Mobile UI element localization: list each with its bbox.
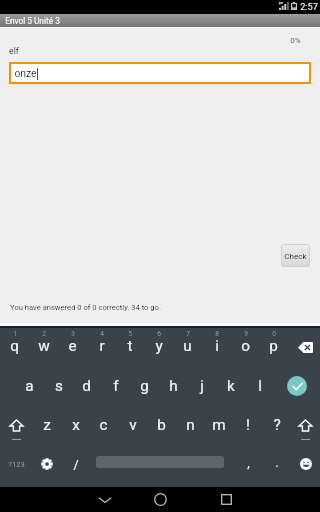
staticText: 2: [42, 330, 46, 338]
button[interactable]: 1: [0, 328, 29, 340]
staticText: k: [227, 377, 235, 395]
staticText: elf: [9, 46, 19, 56]
staticText: q: [10, 337, 19, 355]
staticText: 6: [157, 330, 161, 338]
staticText: j: [200, 377, 204, 395]
staticText: 1: [13, 330, 17, 338]
button[interactable]: 8: [202, 328, 231, 340]
staticText: m: [212, 416, 226, 434]
button[interactable]: Enter: [281, 369, 313, 403]
button[interactable]: u: [173, 334, 202, 358]
button[interactable]: a: [15, 369, 44, 403]
button[interactable]: Recent apps: [206, 487, 246, 512]
staticText: Envol 5 Unité 3: [5, 16, 60, 26]
button[interactable]: d: [72, 369, 101, 403]
staticText: 4: [100, 330, 104, 338]
button[interactable]: c: [89, 408, 118, 442]
button[interactable]: Shift: [2, 406, 31, 444]
button[interactable]: Back: [85, 487, 125, 512]
button[interactable]: o: [231, 334, 260, 358]
button[interactable]: l: [245, 369, 274, 403]
button[interactable]: v: [118, 408, 147, 442]
staticText: /: [73, 457, 79, 472]
button[interactable]: 4: [87, 328, 116, 340]
button[interactable]: /: [61, 449, 90, 479]
button[interactable]: t: [115, 334, 144, 358]
button[interactable]: p: [259, 334, 288, 358]
button[interactable]: .: [262, 447, 291, 477]
staticText: s: [55, 377, 63, 395]
staticText: Check: [284, 251, 307, 260]
button[interactable]: b: [147, 408, 176, 442]
staticText: 9: [244, 330, 248, 338]
button[interactable]: f: [101, 369, 130, 403]
staticText: 2:57: [300, 1, 318, 12]
staticText: 3: [71, 330, 75, 338]
staticText: ,: [247, 455, 250, 470]
button[interactable]: ?123: [2, 449, 31, 479]
staticText: x: [72, 416, 80, 434]
staticText: d: [82, 377, 91, 395]
staticText: 0%: [290, 36, 301, 45]
button[interactable]: z: [32, 408, 61, 442]
staticText: t: [127, 337, 133, 355]
button[interactable]: q: [0, 334, 29, 358]
button[interactable]: 5: [115, 328, 144, 340]
staticText: 8: [215, 330, 219, 338]
button[interactable]: m: [204, 408, 233, 442]
staticText: 5: [128, 330, 132, 338]
button[interactable]: n: [176, 408, 205, 442]
staticText: .: [275, 455, 279, 470]
button[interactable]: 9: [231, 328, 260, 340]
button[interactable]: !: [233, 408, 262, 442]
staticText: You have answered 0 of 0 correctly. 34 t…: [10, 303, 161, 312]
button[interactable]: Backspace: [291, 330, 320, 364]
button[interactable]: g: [130, 369, 159, 403]
button[interactable]: s: [44, 369, 73, 403]
staticText: 0: [272, 330, 276, 338]
staticText: y: [155, 337, 163, 355]
staticText: e: [68, 337, 77, 355]
button[interactable]: ,: [234, 447, 263, 477]
button[interactable]: 7: [173, 328, 202, 340]
staticText: h: [169, 377, 178, 395]
staticText: n: [186, 416, 195, 434]
staticText: r: [99, 337, 105, 355]
staticText: l: [258, 377, 262, 395]
button[interactable]: onze: [9, 62, 311, 84]
staticText: p: [269, 337, 278, 355]
staticText: onze: [14, 67, 37, 79]
button[interactable]: w: [29, 334, 58, 358]
button[interactable]: e: [58, 334, 87, 358]
staticText: v: [129, 416, 137, 434]
button[interactable]: Home: [140, 487, 180, 512]
button[interactable]: Emoji: [291, 449, 320, 479]
button[interactable]: 0: [259, 328, 288, 340]
staticText: f: [113, 377, 119, 395]
button[interactable]: ?: [262, 408, 291, 442]
button[interactable]: 2: [29, 328, 58, 340]
staticText: i: [215, 337, 219, 355]
staticText: !: [246, 416, 250, 434]
staticText: a: [25, 377, 34, 395]
button[interactable]: i: [202, 334, 231, 358]
button[interactable]: r: [87, 334, 116, 358]
button[interactable]: h: [159, 369, 188, 403]
staticText: z: [43, 416, 51, 434]
button[interactable]: 3: [58, 328, 87, 340]
staticText: c: [99, 416, 108, 434]
staticText: o: [241, 337, 250, 355]
button[interactable]: y: [144, 334, 173, 358]
staticText: ?123: [8, 460, 25, 469]
staticText: ?: [273, 416, 281, 434]
button[interactable]: j: [187, 369, 216, 403]
staticText: 7: [186, 330, 190, 338]
button[interactable]: x: [61, 408, 90, 442]
button[interactable]: 6: [144, 328, 173, 340]
button[interactable]: k: [216, 369, 245, 403]
staticText: b: [157, 416, 166, 434]
button[interactable]: Check: [281, 244, 310, 267]
button[interactable]: Shift: [291, 406, 320, 444]
button[interactable]: Settings: [32, 449, 61, 479]
